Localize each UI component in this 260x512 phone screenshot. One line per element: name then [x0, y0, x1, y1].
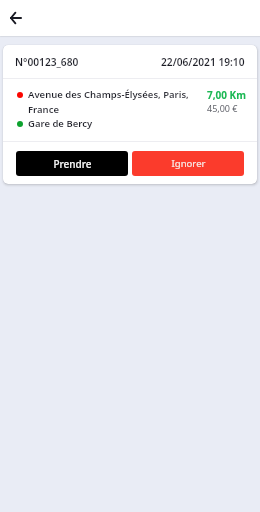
staticText: Prendre — [53, 157, 92, 171]
staticText: 7,00 Km — [207, 88, 246, 102]
button[interactable]: Prendre — [16, 151, 128, 176]
staticText: Avenue des Champs-Élysées, Paris, France — [28, 88, 193, 116]
staticText: Gare de Bercy — [28, 117, 93, 130]
staticText: 22/06/2021 19:10 — [161, 55, 245, 69]
staticText: Ignorer — [171, 157, 206, 170]
button[interactable]: Ignorer — [132, 151, 244, 176]
button[interactable]: Back — [4, 6, 28, 30]
staticText: N°00123_680 — [15, 55, 79, 69]
staticText: 45,00 € — [207, 102, 238, 114]
